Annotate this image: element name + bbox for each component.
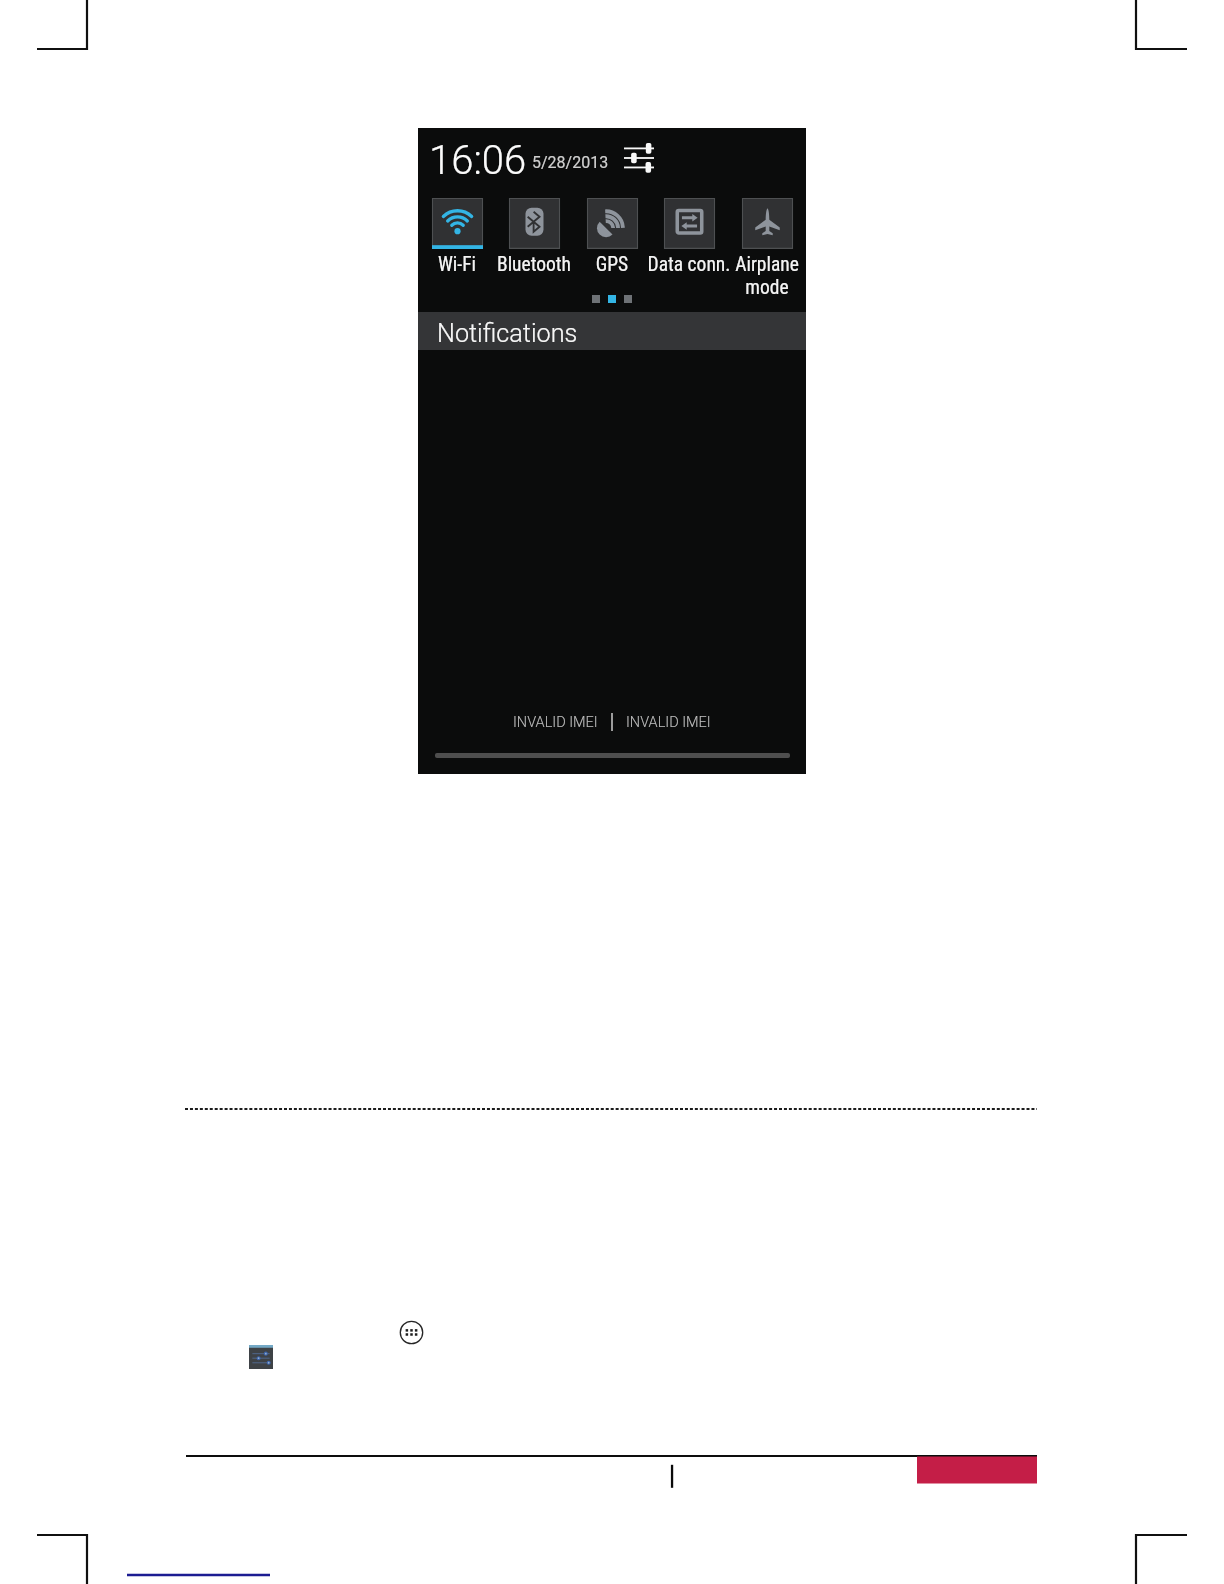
button[interactable]: Quick settings — [614, 137, 664, 179]
button[interactable]: Notifications — [418, 312, 806, 350]
staticText: Airplane mode — [721, 253, 813, 299]
staticText: Wi-Fi — [411, 253, 503, 276]
button[interactable]: Bluetooth — [488, 198, 580, 249]
button[interactable]: Wi-Fi — [411, 198, 503, 249]
staticText: Notifications — [437, 319, 578, 349]
staticText: Data conn. — [643, 253, 735, 276]
button[interactable]: Quick settings thumbnail — [249, 1345, 273, 1369]
staticText: Bluetooth — [488, 253, 580, 276]
staticText: INVALID IMEI — [513, 714, 598, 731]
staticText: 5/28/2013 — [532, 153, 609, 172]
staticText: 16:06 — [429, 137, 527, 184]
button[interactable]: GPS — [566, 198, 658, 249]
button[interactable]: Airplane mode — [721, 198, 813, 249]
button[interactable]: Data conn. — [643, 198, 735, 249]
staticText: INVALID IMEI — [626, 714, 711, 731]
staticText: GPS — [566, 253, 658, 276]
button[interactable]: Apps — [399, 1320, 424, 1345]
